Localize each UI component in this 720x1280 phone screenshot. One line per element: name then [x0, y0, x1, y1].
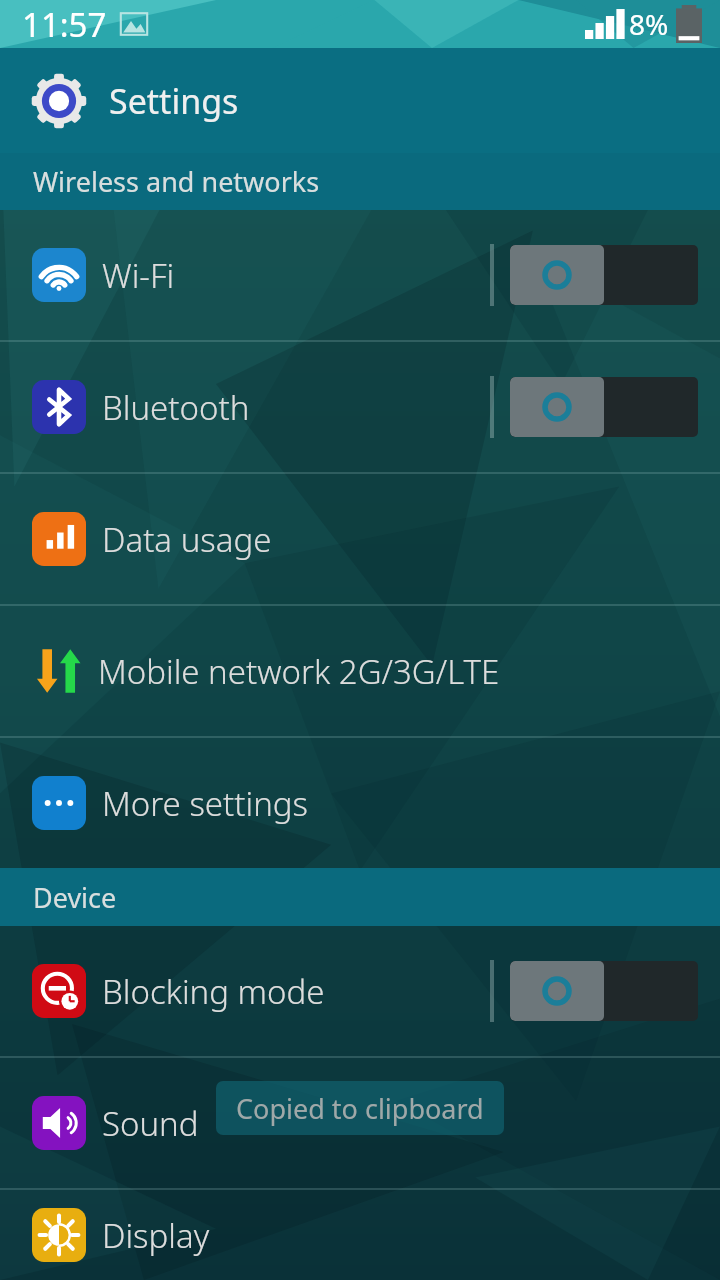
staticText: Copied to clipboard [236, 1090, 484, 1127]
button[interactable]: Wi-Fi switch, off [510, 245, 698, 305]
button[interactable]: Mobile network 2G/3G/LTE [0, 606, 720, 736]
staticText: Data usage [102, 517, 272, 562]
staticText: Mobile network 2G/3G/LTE [98, 649, 500, 694]
button[interactable]: More settings [0, 738, 720, 868]
staticText: 8% [629, 5, 669, 43]
button[interactable]: Blocking mode [0, 926, 720, 1056]
staticText: 11:57 [22, 2, 107, 47]
button[interactable]: Sound [0, 1058, 720, 1188]
staticText: Sound [102, 1101, 199, 1146]
staticText: Display [102, 1213, 210, 1258]
button[interactable]: Wi-Fi [0, 210, 720, 340]
staticText: Wireless and networks [33, 163, 320, 200]
button[interactable]: Data usage [0, 474, 720, 604]
staticText: More settings [102, 781, 308, 826]
staticText: Settings [109, 78, 239, 124]
button[interactable]: Display [0, 1190, 720, 1280]
staticText: Wi-Fi [102, 253, 175, 298]
staticText: Blocking mode [102, 969, 325, 1014]
button[interactable]: Bluetooth switch, off [510, 377, 698, 437]
staticText: Bluetooth [102, 385, 250, 430]
button[interactable]: Blocking mode switch, off [510, 961, 698, 1021]
staticText: Device [33, 879, 117, 916]
button[interactable]: Bluetooth [0, 342, 720, 472]
